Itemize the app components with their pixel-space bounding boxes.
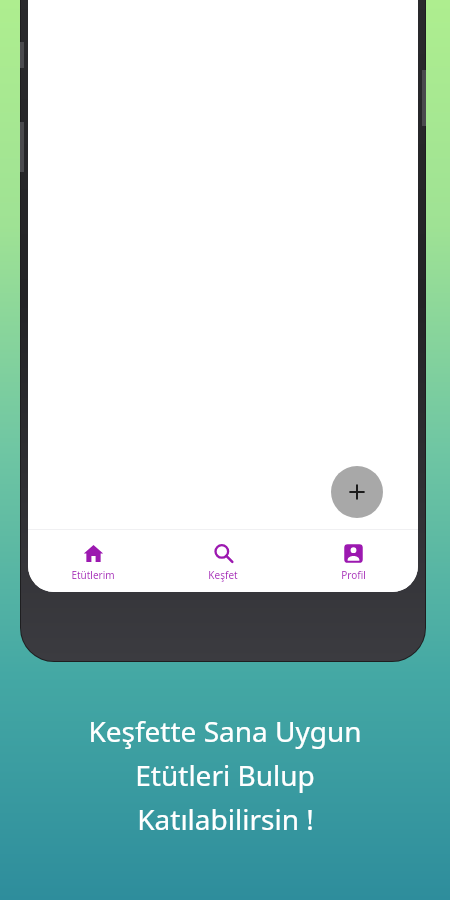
button[interactable]: Profil [288, 535, 418, 588]
staticText: Profil [341, 568, 366, 582]
staticText: Etütleri Bulup [135, 756, 315, 794]
button[interactable]: Etütlerim [28, 535, 158, 588]
staticText: Keşfette Sana Uygun [88, 712, 362, 750]
staticText: Keşfet [208, 568, 238, 582]
staticText: Etütlerim [71, 568, 115, 582]
button[interactable]: Keşfet [158, 535, 288, 588]
staticText: Katılabilirsin ! [137, 800, 314, 838]
button[interactable]: Add [331, 466, 383, 518]
